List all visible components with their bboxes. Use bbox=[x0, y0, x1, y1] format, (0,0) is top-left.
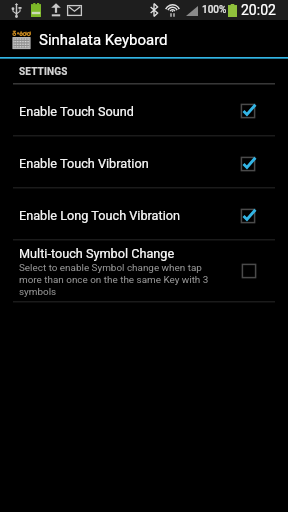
staticText: Enable Touch Sound bbox=[19, 104, 236, 119]
button[interactable]: Unchecked bbox=[237, 259, 261, 283]
button[interactable]: Multi-touch Symbol Change bbox=[0, 240, 288, 302]
staticText: Enable Long Touch Vibration bbox=[19, 208, 236, 223]
staticText: 100% bbox=[202, 4, 227, 16]
button[interactable]: Checked bbox=[236, 152, 260, 176]
staticText: SETTINGS bbox=[19, 66, 68, 78]
staticText: 20:02 bbox=[241, 2, 276, 18]
button[interactable]: Checked bbox=[236, 204, 260, 228]
button[interactable]: Enable Touch Vibration bbox=[0, 136, 288, 188]
staticText: Enable Touch Vibration bbox=[19, 156, 236, 171]
button[interactable]: Enable Long Touch Vibration bbox=[0, 188, 288, 240]
button[interactable]: Enable Touch Sound bbox=[0, 83, 288, 136]
button[interactable]: Checked bbox=[236, 99, 260, 123]
staticText: Select to enable Symbol change when tap … bbox=[19, 262, 212, 298]
staticText: Multi-touch Symbol Change bbox=[19, 246, 175, 261]
staticText: Sinhalata Keyboard bbox=[39, 31, 168, 49]
